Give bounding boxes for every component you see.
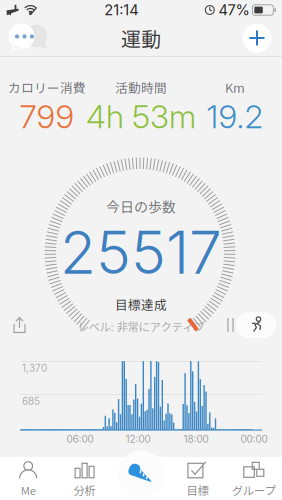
- staticText: 00:00: [240, 433, 267, 445]
- staticText: 活動時間: [115, 78, 167, 96]
- button[interactable]: Me: [0, 455, 56, 500]
- button[interactable]: Share: [0, 310, 39, 339]
- button[interactable]: Run: [234, 310, 278, 340]
- staticText: 25517: [60, 217, 222, 288]
- staticText: 今日の歩数: [106, 196, 176, 216]
- button[interactable]: グループ: [226, 455, 282, 500]
- staticText: 21:14: [104, 1, 138, 19]
- staticText: 運動: [121, 23, 161, 52]
- staticText: 18:00: [183, 433, 208, 445]
- button[interactable]: Messages: [0, 21, 52, 55]
- staticText: Km: [225, 78, 245, 96]
- staticText: 799: [19, 97, 74, 136]
- button[interactable]: 目標: [169, 455, 226, 500]
- staticText: 4h 53m: [86, 97, 196, 136]
- staticText: レベル: 非常にアクティブ: [77, 318, 204, 334]
- staticText: グループ: [232, 482, 276, 498]
- staticText: Me: [21, 482, 36, 498]
- staticText: 目標達成: [115, 295, 167, 313]
- staticText: 06:00: [66, 433, 93, 445]
- button[interactable]: Activity: [116, 448, 166, 498]
- staticText: 685: [22, 395, 40, 407]
- staticText: 12:00: [125, 433, 150, 445]
- staticText: 目標: [186, 482, 208, 498]
- staticText: 1,370: [22, 362, 47, 374]
- staticText: 19.2: [206, 97, 263, 136]
- button[interactable]: Add: [239, 20, 275, 56]
- staticText: 47%: [218, 1, 249, 19]
- button[interactable]: 分析: [56, 455, 113, 500]
- staticText: カロリー消費: [8, 78, 86, 96]
- staticText: 分析: [74, 482, 96, 498]
